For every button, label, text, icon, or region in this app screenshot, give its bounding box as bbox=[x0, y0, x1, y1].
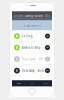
staticText: Desk Lamp · Auto bbox=[22, 69, 45, 72]
staticText: Ceiling bbox=[22, 34, 33, 38]
staticText: Automation bbox=[42, 83, 49, 84]
staticText: Home bbox=[15, 14, 23, 18]
staticText: Living Room bbox=[25, 14, 43, 18]
button[interactable]: Ceiling bbox=[12, 30, 52, 42]
button[interactable]: Floor Lamp · Off bbox=[12, 53, 52, 65]
staticText: Ambient Strip bbox=[22, 46, 41, 49]
staticText: Edit bbox=[45, 14, 50, 18]
button[interactable]: ‹ bbox=[13, 11, 24, 20]
staticText: Rooms bbox=[29, 83, 34, 84]
button[interactable]: Rooms bbox=[25, 80, 39, 86]
button[interactable]: Edit bbox=[44, 11, 51, 20]
staticText: Floor Lamp · Off bbox=[22, 57, 43, 61]
button[interactable]: Ambient Strip bbox=[12, 42, 52, 53]
button[interactable]: Desk Lamp · Auto bbox=[12, 65, 52, 76]
button[interactable]: Home bbox=[12, 80, 25, 86]
staticText: ‹ bbox=[14, 13, 15, 19]
staticText: Home bbox=[17, 83, 21, 84]
staticText: 4 accessories bbox=[23, 24, 40, 27]
button[interactable]: Automation bbox=[39, 80, 52, 86]
